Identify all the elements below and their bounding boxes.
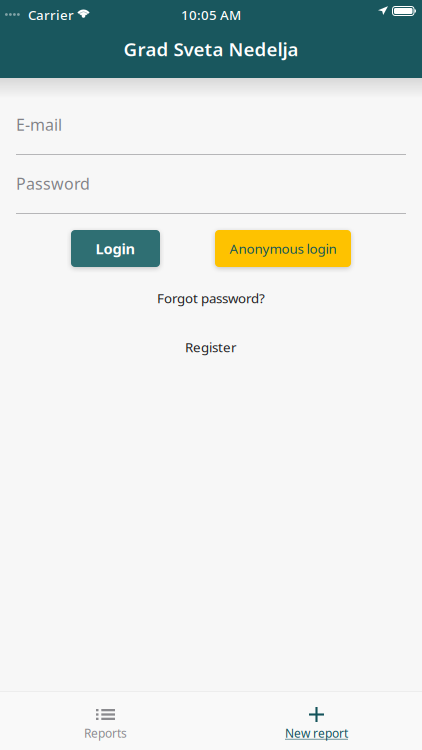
button[interactable]: Reports [0,692,211,750]
button[interactable]: New report [211,692,422,750]
staticText: Grad Sveta Nedelja [123,37,298,61]
staticText: New report [285,725,348,741]
staticText: Carrier [28,6,74,24]
staticText: Register [185,338,237,356]
button[interactable]: Login [71,230,160,267]
staticText: Login [95,239,135,258]
staticText: 10:05 AM [181,6,241,24]
staticText: Anonymous login [229,240,336,257]
staticText: Forgot password? [157,289,265,307]
button[interactable]: Forgot password? [0,285,422,311]
staticText: Password [16,173,90,194]
staticText: E-mail [16,114,62,135]
staticText: Reports [84,725,127,741]
button[interactable]: Register [0,334,422,360]
button[interactable]: Anonymous login [215,230,351,267]
